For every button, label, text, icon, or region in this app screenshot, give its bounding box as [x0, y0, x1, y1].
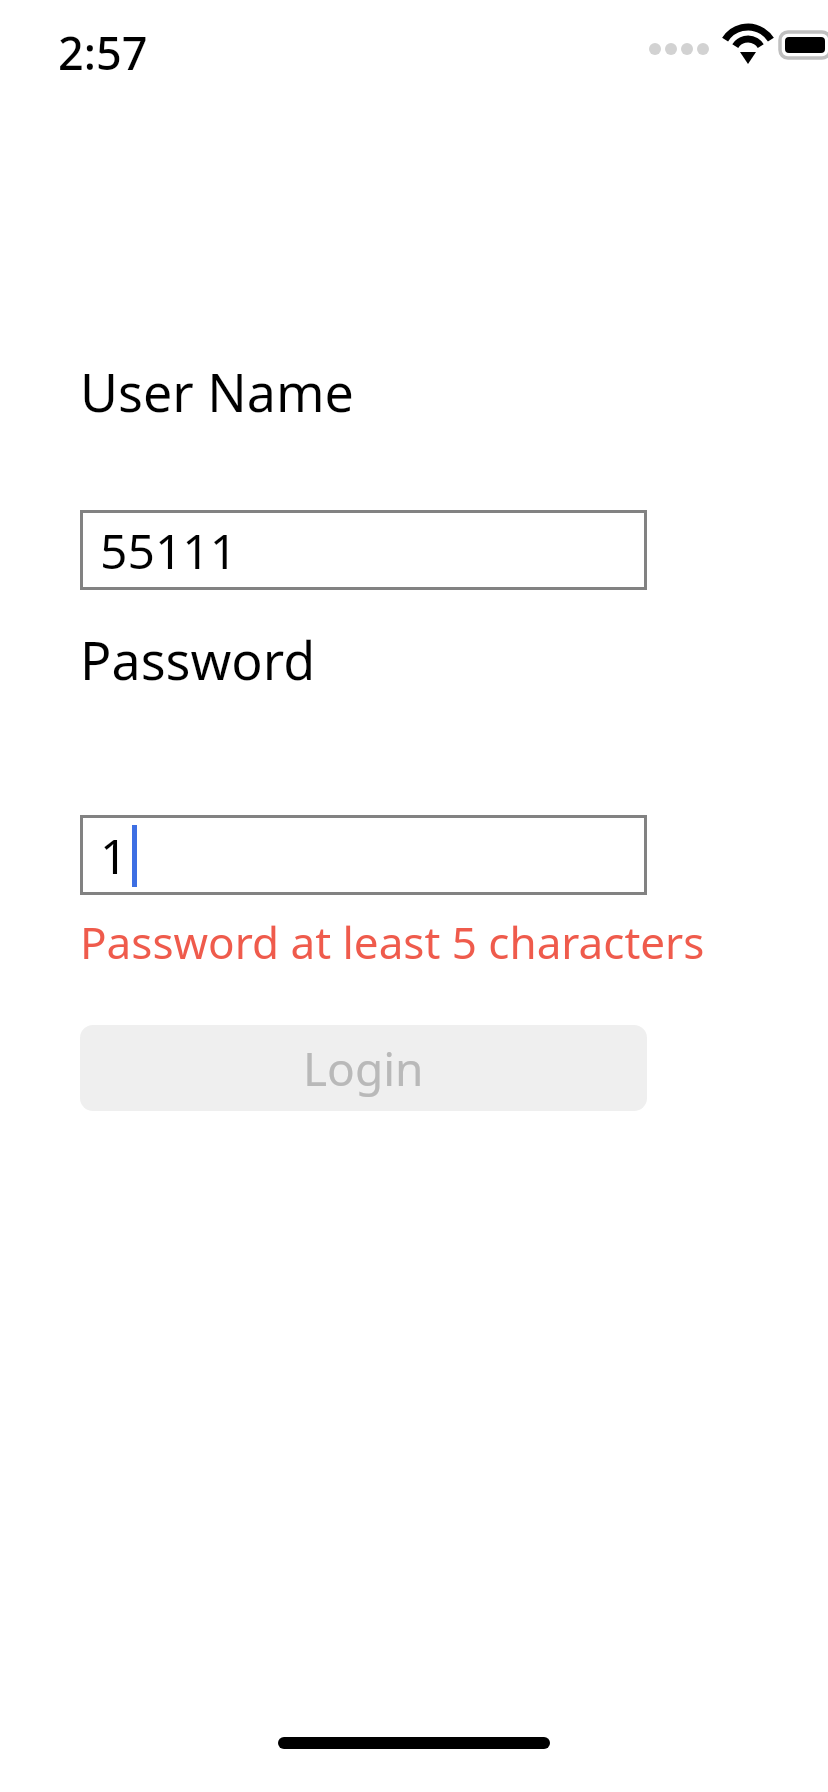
staticText: 1	[100, 823, 128, 888]
staticText: User Name	[80, 356, 354, 427]
staticText: Password	[80, 624, 316, 695]
staticText: 55111	[100, 518, 238, 583]
staticText: Login	[303, 1037, 424, 1100]
button[interactable]: 55111	[80, 510, 647, 590]
staticText: Password at least 5 characters	[80, 912, 705, 972]
other: Status icons	[648, 20, 808, 68]
button[interactable]: 1	[80, 815, 647, 895]
staticText: 2:57	[58, 22, 148, 83]
button[interactable]: Login	[80, 1025, 647, 1111]
